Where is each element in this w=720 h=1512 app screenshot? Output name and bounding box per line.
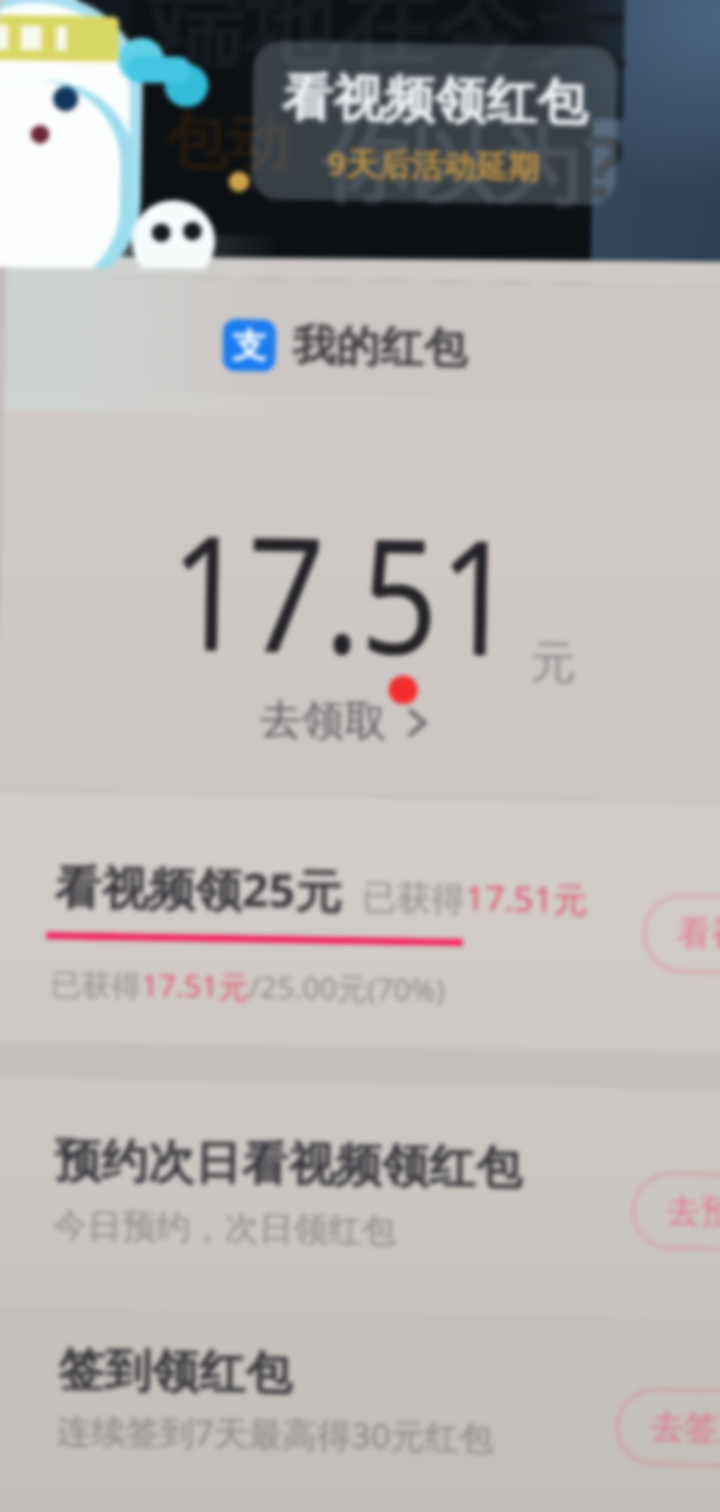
staticText: 元 — [530, 635, 577, 692]
staticText: 你以为? — [319, 101, 626, 224]
button[interactable]: 签到领红包 — [0, 1297, 720, 1512]
staticText: 端地在今天 — [147, 0, 627, 90]
staticText: 签到领红包 — [58, 1341, 292, 1404]
staticText: 包动 — [164, 103, 290, 183]
staticText: 今日预约，次日领红包 — [53, 1204, 397, 1252]
staticText: 看视频领红包 — [281, 67, 588, 135]
staticText: 看视频领25元 — [54, 854, 343, 922]
staticText: 去签到 — [650, 1405, 720, 1450]
staticText: 支 — [232, 324, 267, 368]
button[interactable]: 去签到 — [615, 1387, 720, 1468]
staticText: 已获得17.51元/25.00元(70%) — [51, 963, 445, 1010]
staticText: 看视频 — [676, 912, 720, 956]
button[interactable]: 看视频 — [642, 893, 720, 975]
staticText: 17.51 — [168, 480, 518, 702]
staticText: 去领取 — [259, 694, 387, 749]
button[interactable]: 支 — [222, 318, 468, 376]
button[interactable]: 看视频领25元 — [0, 795, 720, 1053]
staticText: 已获得17.51元 — [362, 873, 588, 923]
button[interactable]: 预约次日看视频领红包 — [0, 1088, 720, 1316]
staticText: 我的红包 — [292, 319, 468, 376]
staticText: 去预约 — [666, 1189, 720, 1234]
button[interactable]: 去领取 — [259, 694, 435, 750]
staticText: 连续签到7天最高得30元红包 — [57, 1407, 494, 1460]
button[interactable]: 去预约 — [631, 1171, 720, 1252]
staticText: 9天后活动延期 — [327, 141, 540, 188]
staticText: 预约次日看视频领红包 — [54, 1132, 523, 1198]
